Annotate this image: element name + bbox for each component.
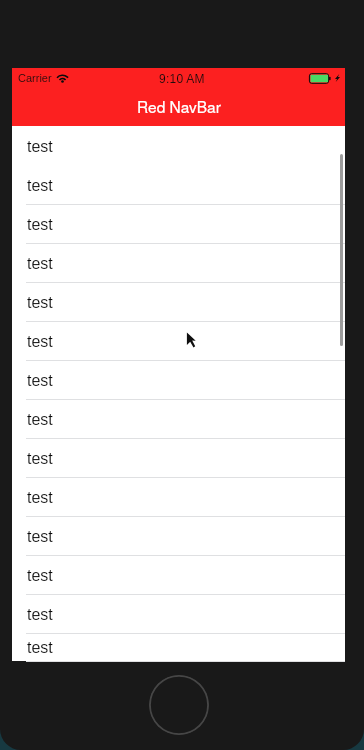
button[interactable]: test (12, 244, 345, 283)
staticText: test (27, 567, 53, 585)
staticText: Carrier (18, 72, 52, 84)
staticText: test (27, 411, 53, 429)
button[interactable]: test (12, 322, 345, 361)
staticText: test (27, 639, 53, 657)
button[interactable]: test (12, 361, 345, 400)
button[interactable]: test (12, 166, 345, 205)
button[interactable]: test (12, 517, 345, 556)
staticText: Red NavBar (137, 95, 221, 117)
other: Wi-Fi signal (57, 74, 68, 83)
button[interactable]: test (12, 283, 345, 322)
button[interactable]: test (12, 595, 345, 634)
staticText: test (27, 333, 53, 351)
button[interactable]: test (12, 127, 345, 166)
staticText: test (27, 528, 53, 546)
button[interactable]: Home (149, 675, 209, 735)
staticText: test (27, 138, 53, 156)
button[interactable]: test (12, 439, 345, 478)
button[interactable]: test (12, 556, 345, 595)
staticText: test (27, 177, 53, 195)
button[interactable]: test (12, 634, 345, 662)
button[interactable]: test (12, 478, 345, 517)
staticText: test (27, 489, 53, 507)
staticText: 9:10 AM (159, 72, 205, 85)
button[interactable]: test (12, 400, 345, 439)
staticText: test (27, 450, 53, 468)
staticText: test (27, 255, 53, 273)
staticText: test (27, 372, 53, 390)
other: Battery charging (309, 73, 331, 84)
staticText: test (27, 216, 53, 234)
button[interactable]: test (12, 205, 345, 244)
staticText: test (27, 294, 53, 312)
staticText: test (27, 606, 53, 624)
